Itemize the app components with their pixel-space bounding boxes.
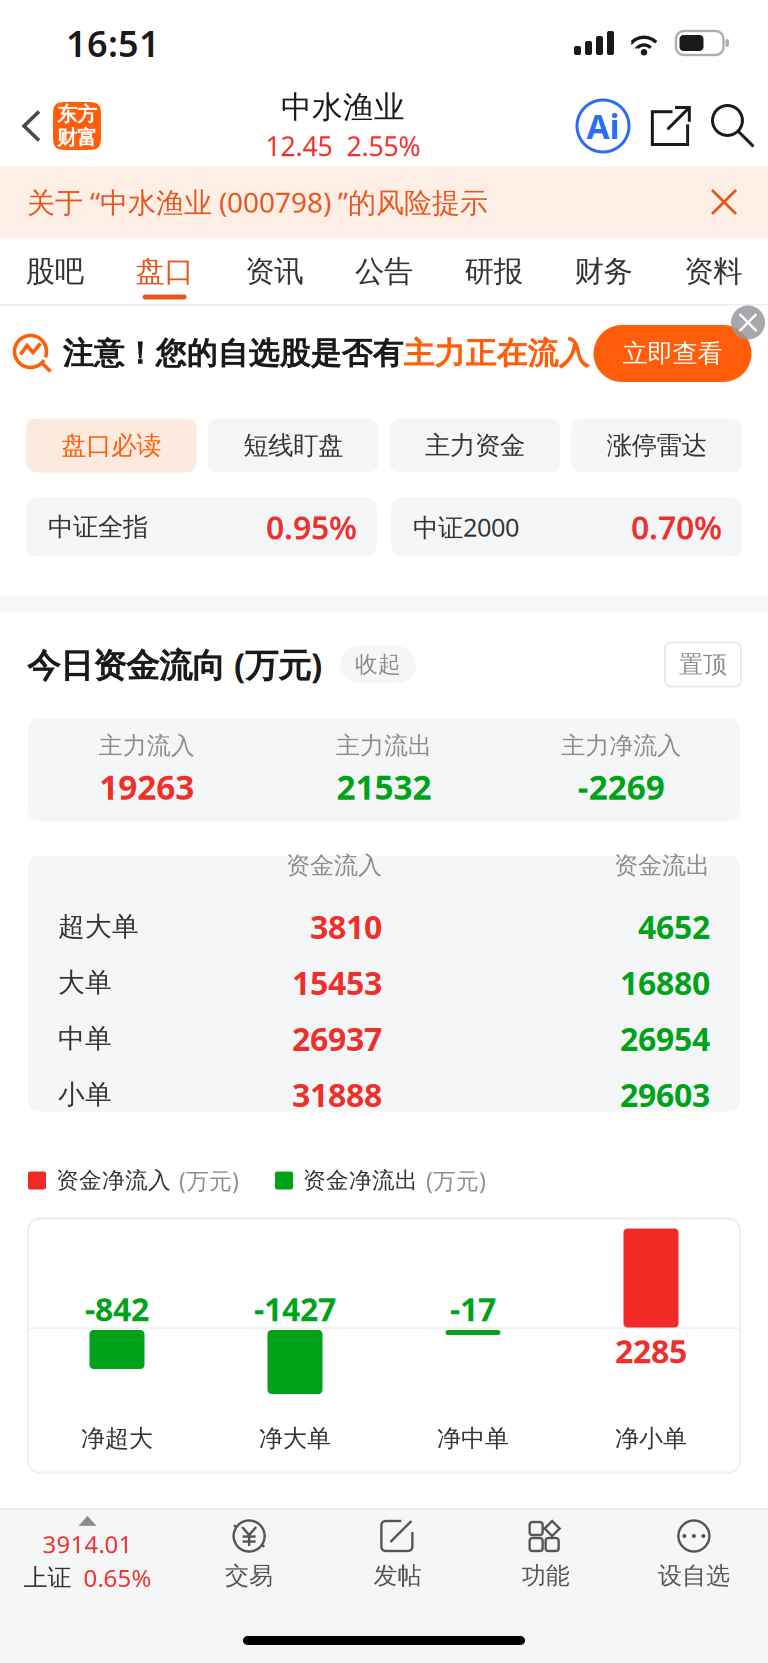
staticText: 12.45 bbox=[265, 128, 332, 163]
staticText: 主力流出 bbox=[336, 731, 432, 761]
button[interactable]: 股吧 bbox=[0, 238, 110, 304]
staticText: 资金流入 bbox=[286, 851, 382, 880]
button[interactable]: 立即查看 bbox=[593, 325, 751, 382]
button[interactable]: 资料 bbox=[658, 238, 768, 304]
staticText: 中单 bbox=[58, 1022, 112, 1055]
staticText: (万元) bbox=[179, 1165, 239, 1195]
staticText: 资讯 bbox=[245, 253, 303, 289]
staticText: 资金流出 bbox=[614, 851, 710, 880]
button[interactable]: Dismiss risk notice bbox=[712, 190, 736, 214]
staticText: 净小单 bbox=[615, 1424, 687, 1453]
button[interactable]: 中证2000 bbox=[391, 497, 742, 556]
button[interactable]: 发帖 bbox=[323, 1515, 471, 1612]
staticText: 21532 bbox=[336, 765, 431, 809]
staticText: 中水渔业 bbox=[281, 88, 405, 126]
staticText: 净大单 bbox=[259, 1424, 331, 1453]
staticText: 16:51 bbox=[66, 19, 160, 67]
button[interactable]: 置顶 bbox=[665, 642, 741, 686]
staticText: 超大单 bbox=[58, 910, 139, 943]
staticText: 31888 bbox=[292, 1073, 382, 1116]
staticText: 16880 bbox=[620, 961, 710, 1004]
staticText: 设自选 bbox=[658, 1561, 730, 1590]
staticText: 2.55% bbox=[346, 128, 420, 163]
button[interactable]: Close advertisement bbox=[731, 305, 765, 339]
staticText: 26954 bbox=[620, 1017, 710, 1060]
staticText: 大单 bbox=[58, 966, 112, 999]
staticText: 财富 bbox=[57, 125, 97, 150]
button[interactable]: 财务 bbox=[549, 238, 658, 304]
button[interactable]: 资讯 bbox=[219, 238, 329, 304]
staticText: 净中单 bbox=[437, 1424, 509, 1453]
staticText: 研报 bbox=[465, 253, 523, 289]
button[interactable]: Back to 东方财富 bbox=[0, 86, 109, 166]
staticText: 涨停雷达 bbox=[607, 430, 707, 461]
button[interactable]: 中证全指 bbox=[26, 497, 377, 556]
staticText: -17 bbox=[450, 1287, 496, 1330]
button[interactable]: 公告 bbox=[329, 238, 439, 304]
staticText: 注意！您的自选股是否有 bbox=[62, 335, 403, 372]
button[interactable]: 3914.01 bbox=[0, 1516, 175, 1612]
staticText: 发帖 bbox=[373, 1561, 421, 1590]
staticText: 立即查看 bbox=[622, 338, 722, 369]
staticText: 3914.01 bbox=[42, 1528, 132, 1560]
button[interactable]: 设自选 bbox=[620, 1515, 768, 1612]
button[interactable]: 主力资金 bbox=[389, 418, 560, 472]
staticText: 交易 bbox=[225, 1561, 273, 1590]
staticText: 短线盯盘 bbox=[243, 430, 343, 461]
staticText: Ai bbox=[586, 104, 619, 148]
button[interactable]: Search bbox=[711, 104, 755, 148]
staticText: 主力正在流入 bbox=[403, 335, 589, 372]
staticText: 中证2000 bbox=[413, 510, 519, 544]
staticText: 东方 bbox=[57, 102, 97, 126]
staticText: 15453 bbox=[292, 961, 382, 1004]
staticText: -2269 bbox=[578, 765, 665, 809]
staticText: 4652 bbox=[638, 905, 710, 948]
staticText: 功能 bbox=[522, 1561, 570, 1590]
button[interactable]: 涨停雷达 bbox=[571, 418, 742, 472]
staticText: 3810 bbox=[310, 905, 382, 948]
staticText: -1427 bbox=[254, 1287, 336, 1330]
staticText: 财务 bbox=[574, 253, 632, 289]
staticText: 资料 bbox=[684, 253, 742, 289]
staticText: 小单 bbox=[58, 1078, 112, 1111]
staticText: 0.65% bbox=[83, 1562, 151, 1594]
staticText: 资金净流入 bbox=[56, 1167, 171, 1194]
staticText: 上证 bbox=[23, 1563, 71, 1592]
staticText: 中证全指 bbox=[48, 511, 148, 542]
staticText: 盘口必读 bbox=[61, 430, 161, 461]
button[interactable]: 盘口必读 bbox=[26, 418, 197, 472]
staticText: 资金净流出 bbox=[303, 1167, 418, 1194]
staticText: 0.70% bbox=[631, 506, 722, 548]
staticText: 0.95% bbox=[266, 506, 357, 548]
staticText: 置顶 bbox=[679, 650, 727, 679]
staticText: 收起 bbox=[355, 651, 401, 678]
staticText: 公告 bbox=[355, 253, 413, 289]
staticText: -842 bbox=[85, 1287, 149, 1330]
staticText: 主力流入 bbox=[99, 731, 195, 761]
staticText: 主力净流入 bbox=[561, 731, 681, 761]
button[interactable]: 短线盯盘 bbox=[208, 418, 378, 472]
staticText: 26937 bbox=[292, 1017, 382, 1060]
button[interactable]: Share bbox=[649, 105, 691, 147]
staticText: 今日资金流向 (万元) bbox=[27, 642, 322, 687]
button[interactable]: 收起 bbox=[340, 646, 416, 683]
button[interactable]: 功能 bbox=[471, 1515, 620, 1612]
button[interactable]: 交易 bbox=[175, 1515, 323, 1612]
staticText: 股吧 bbox=[26, 253, 84, 289]
staticText: 19263 bbox=[99, 765, 194, 809]
staticText: 29603 bbox=[620, 1073, 710, 1116]
staticText: 2285 bbox=[615, 1329, 687, 1372]
staticText: 主力资金 bbox=[425, 430, 525, 461]
staticText: 净超大 bbox=[81, 1424, 153, 1453]
staticText: (万元) bbox=[426, 1165, 486, 1195]
staticText: 关于 “中水渔业 (000798) ”的风险提示 bbox=[27, 183, 488, 221]
button[interactable]: 研报 bbox=[439, 238, 549, 304]
staticText: 盘口 bbox=[136, 253, 194, 289]
button[interactable]: AI assistant bbox=[577, 100, 629, 152]
button[interactable]: 盘口 bbox=[110, 238, 219, 304]
